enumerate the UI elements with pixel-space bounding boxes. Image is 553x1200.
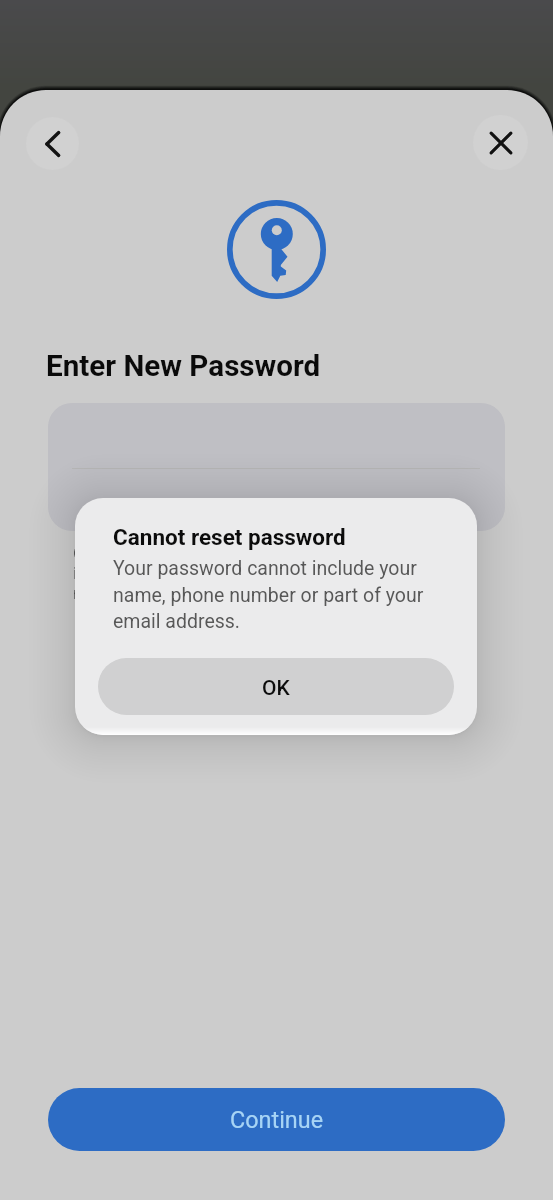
staticText: OK: [262, 676, 290, 701]
button[interactable]: [48, 403, 505, 531]
staticText: Your password cannot include your name, …: [113, 557, 424, 632]
staticText: Continue: [230, 1106, 324, 1133]
staticText: Create a password with at least 8 charac…: [73, 543, 412, 603]
button[interactable]: Back: [26, 117, 79, 170]
button[interactable]: Close: [473, 115, 528, 170]
button[interactable]: OK: [98, 658, 454, 715]
staticText: Cannot reset password: [113, 524, 346, 550]
staticText: Enter New Password: [46, 349, 321, 384]
button[interactable]: Continue: [48, 1088, 505, 1151]
